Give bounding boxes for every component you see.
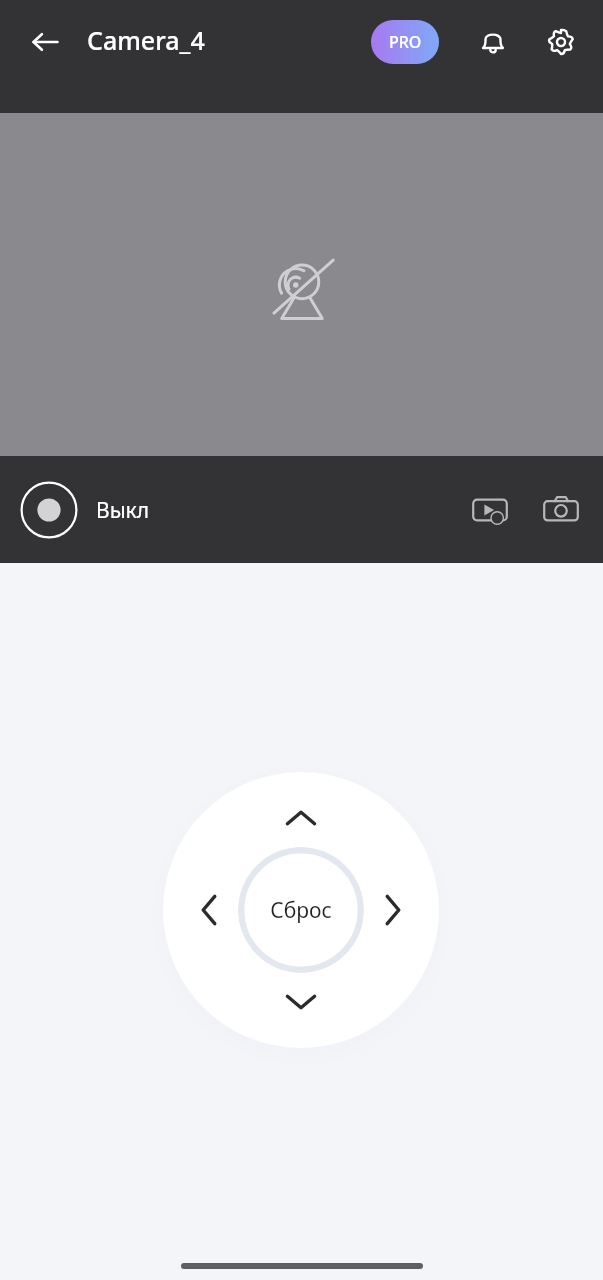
button[interactable]: Выкл: [18, 479, 150, 541]
button[interactable]: Pan left: [177, 877, 243, 943]
button[interactable]: PRO: [371, 20, 439, 64]
button[interactable]: HD video: [464, 484, 516, 536]
button[interactable]: Pan right: [359, 877, 425, 943]
button[interactable]: Notifications: [469, 18, 517, 66]
button[interactable]: Settings: [537, 18, 585, 66]
staticText: Выкл: [96, 496, 150, 525]
button[interactable]: Tilt up: [268, 786, 334, 852]
staticText: Сброс: [270, 896, 332, 925]
button[interactable]: Back: [21, 18, 69, 66]
button[interactable]: Tilt down: [268, 968, 334, 1034]
button[interactable]: Take snapshot: [535, 484, 587, 536]
staticText: PRO: [389, 31, 422, 53]
button[interactable]: Сброс: [238, 847, 364, 973]
staticText: Camera_4: [87, 23, 205, 57]
